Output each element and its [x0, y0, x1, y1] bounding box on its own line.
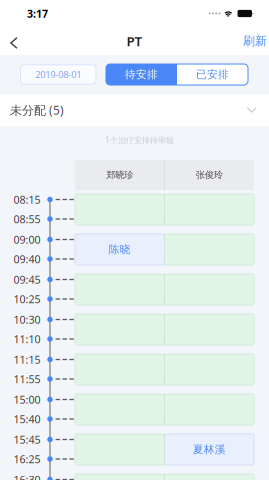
- staticText: 15:45: [13, 432, 40, 447]
- staticText: 刷新: [243, 34, 267, 48]
- staticText: 张俊玲: [196, 169, 223, 181]
- button[interactable]: 已安排: [177, 64, 248, 85]
- staticText: 10:25: [13, 292, 40, 306]
- button[interactable]: 刷新: [243, 27, 269, 55]
- staticText: 15:40: [13, 412, 40, 426]
- button[interactable]: 2019-08-01: [20, 65, 96, 84]
- staticText: 2019-08-01: [35, 68, 81, 81]
- staticText: 10:30: [13, 312, 40, 327]
- staticText: 待安排: [125, 68, 158, 81]
- staticText: 09:40: [13, 252, 40, 266]
- staticText: 08:15: [13, 192, 40, 207]
- staticText: 08:55: [13, 212, 40, 226]
- staticText: 11:15: [13, 352, 40, 367]
- staticText: 15:00: [13, 392, 40, 407]
- staticText: PT: [126, 32, 142, 50]
- staticText: 1个治疗安排待审核: [105, 135, 174, 145]
- button[interactable]: [75, 474, 254, 480]
- staticText: 陈晓: [109, 243, 131, 256]
- staticText: 11:10: [13, 332, 40, 346]
- staticText: 11:55: [13, 372, 40, 386]
- staticText: 16:25: [13, 452, 40, 466]
- staticText: 16:30: [13, 472, 40, 480]
- staticText: 已安排: [196, 68, 229, 81]
- staticText: 郑晓珍: [106, 169, 133, 181]
- staticText: 09:45: [13, 272, 40, 287]
- staticText: 09:00: [13, 232, 40, 247]
- button[interactable]: 未分配 (5): [0, 94, 269, 126]
- button[interactable]: 陈晓: [75, 234, 254, 265]
- staticText: 3:17: [27, 6, 48, 21]
- button[interactable]: 待安排: [106, 64, 177, 85]
- staticText: 夏林溪: [193, 443, 226, 456]
- button[interactable]: 夏林溪: [75, 434, 254, 465]
- staticText: 未分配 (5): [10, 102, 64, 118]
- button[interactable]: Back: [0, 27, 28, 55]
